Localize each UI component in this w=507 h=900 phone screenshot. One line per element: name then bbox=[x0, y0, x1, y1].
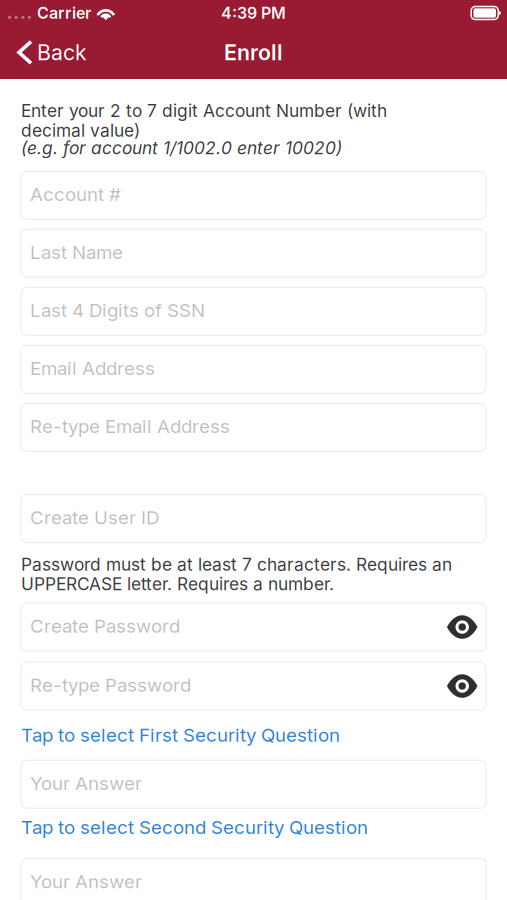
staticText: Create Password bbox=[30, 615, 180, 637]
staticText: Create User ID bbox=[30, 506, 159, 529]
staticText: Password must be at least 7 characters. … bbox=[21, 554, 452, 594]
staticText: Last 4 Digits of SSN bbox=[30, 299, 205, 322]
staticText: Back bbox=[37, 40, 87, 65]
staticText: Re-type Email Address bbox=[30, 415, 230, 438]
staticText: Re-type Password bbox=[30, 674, 191, 696]
button[interactable]: Tap to select Second Security Question bbox=[21, 817, 486, 837]
staticText: Enroll bbox=[224, 40, 283, 65]
staticText: Your Answer bbox=[30, 772, 142, 795]
staticText: Tap to select First Security Question bbox=[21, 724, 340, 746]
staticText: Your Answer bbox=[30, 870, 142, 893]
staticText: Email Address bbox=[30, 357, 155, 380]
button[interactable]: Back bbox=[0, 26, 101, 79]
staticText: 4:39 PM bbox=[221, 3, 286, 23]
staticText: Carrier bbox=[37, 3, 91, 23]
staticText: Account # bbox=[30, 183, 121, 206]
staticText: Last Name bbox=[30, 241, 123, 264]
button[interactable]: Tap to select First Security Question bbox=[21, 725, 486, 745]
staticText: (e.g. for account 1/1002.0 enter 10020) bbox=[21, 138, 342, 158]
staticText: Tap to select Second Security Question bbox=[21, 816, 368, 839]
staticText: Enter your 2 to 7 digit Account Number (… bbox=[21, 101, 387, 140]
